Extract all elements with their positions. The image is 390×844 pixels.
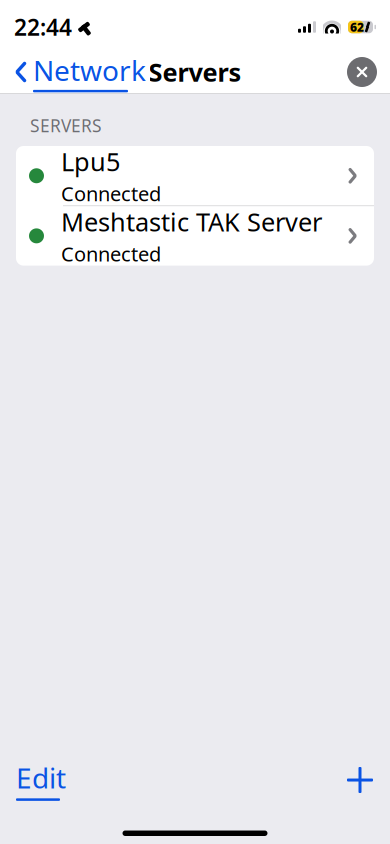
- button[interactable]: Network: [7, 46, 154, 98]
- staticText: Servers: [148, 55, 241, 89]
- button[interactable]: Edit: [0, 751, 82, 809]
- staticText: 22:44: [14, 12, 72, 42]
- staticText: Meshtastic TAK Server: [61, 205, 322, 238]
- staticText: Connected: [61, 240, 161, 267]
- button[interactable]: Lpu5: [16, 146, 374, 205]
- staticText: Network: [33, 52, 146, 89]
- staticText: Edit: [16, 759, 66, 796]
- button[interactable]: Meshtastic TAK Server: [16, 206, 374, 266]
- staticText: SERVERS: [30, 114, 102, 137]
- button[interactable]: Close: [341, 51, 383, 93]
- staticText: Connected: [61, 180, 161, 207]
- staticText: Lpu5: [61, 145, 120, 178]
- staticText: 62: [350, 19, 364, 35]
- button[interactable]: Add server: [330, 758, 390, 802]
